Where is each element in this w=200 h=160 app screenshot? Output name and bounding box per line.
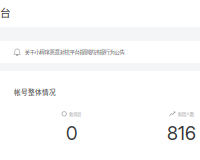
staticText: 新增人数 (178, 111, 194, 117)
button[interactable]: 关于小程序恶意对抗平台规则的违规行为公告 (0, 41, 200, 63)
staticText: 0 (66, 122, 77, 145)
staticText: 帐号整体情况 (14, 87, 56, 97)
button[interactable]: 新增人数 (167, 111, 196, 145)
staticText: 816 (167, 122, 196, 145)
staticText: 台 (0, 4, 11, 20)
staticText: 关于小程序恶意对抗平台规则的违规行为公告 (24, 48, 124, 56)
button[interactable]: 新消息 (62, 111, 81, 145)
staticText: 新消息 (69, 111, 81, 117)
